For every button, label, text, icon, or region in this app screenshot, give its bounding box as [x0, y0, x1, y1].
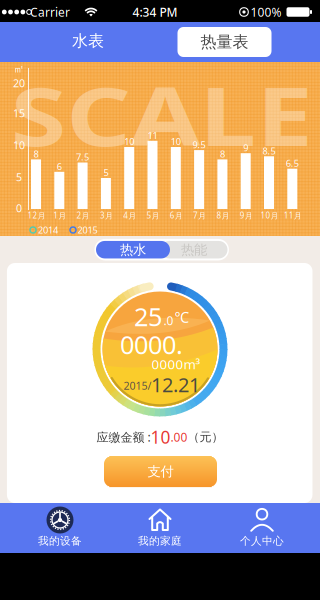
- staticText: 2015: [77, 224, 97, 236]
- staticText: ㎡: [13, 62, 24, 75]
- staticText: 10: [124, 135, 134, 148]
- staticText: 8: [33, 148, 38, 160]
- staticText: 0: [16, 201, 22, 215]
- staticText: 8: [220, 148, 225, 160]
- staticText: 9月: [240, 210, 253, 221]
- staticText: 11月: [284, 210, 302, 221]
- staticText: ℃: [174, 307, 189, 327]
- staticText: 9.5: [193, 138, 206, 151]
- staticText: 7月: [193, 210, 206, 221]
- staticText: 6: [57, 160, 62, 172]
- staticText: 12月: [27, 210, 45, 221]
- staticText: 2015/: [123, 378, 151, 393]
- staticText: 25: [134, 300, 162, 333]
- button[interactable]: 我的家庭: [113, 503, 207, 553]
- staticText: 9: [243, 141, 248, 154]
- staticText: （元）: [187, 430, 223, 444]
- button[interactable]: 热能: [160, 241, 227, 258]
- staticText: 3月: [100, 210, 113, 221]
- staticText: SCALE: [42, 62, 282, 168]
- staticText: 热能: [181, 241, 207, 258]
- staticText: 5月: [146, 210, 159, 221]
- staticText: 我的设备: [38, 534, 82, 547]
- button[interactable]: 支付: [104, 456, 217, 487]
- staticText: 2月: [77, 210, 90, 221]
- staticText: 水表: [72, 31, 104, 51]
- staticText: 12.21: [151, 371, 200, 398]
- staticText: 支付: [147, 463, 173, 480]
- staticText: 6.5: [286, 157, 299, 169]
- staticText: 8月: [216, 210, 229, 221]
- staticText: 11: [147, 129, 157, 141]
- staticText: 个人中心: [240, 534, 284, 547]
- staticText: 15: [13, 106, 25, 120]
- staticText: 10: [171, 135, 181, 148]
- staticText: 4月: [123, 210, 136, 221]
- staticText: Carrier: [30, 4, 70, 20]
- staticText: 0000m³: [151, 355, 200, 373]
- staticText: 1月: [53, 210, 66, 221]
- staticText: .00: [170, 429, 187, 445]
- staticText: 0000.: [120, 328, 183, 361]
- staticText: 热水: [120, 241, 146, 258]
- button[interactable]: 我的设备: [13, 503, 107, 553]
- button[interactable]: 热水: [96, 241, 170, 258]
- staticText: 8.5: [262, 145, 275, 157]
- staticText: 5: [103, 166, 108, 179]
- staticText: 热量表: [200, 32, 248, 52]
- staticText: 2014: [38, 224, 58, 236]
- staticText: 10月: [260, 210, 278, 221]
- staticText: 7.5: [76, 151, 89, 163]
- staticText: 20: [13, 76, 25, 90]
- staticText: 100%: [250, 4, 281, 20]
- staticText: 6月: [170, 210, 183, 221]
- button[interactable]: 热量表: [177, 27, 271, 57]
- staticText: 应缴金额 :: [96, 429, 150, 445]
- button[interactable]: 个人中心: [215, 503, 309, 553]
- staticText: 我的家庭: [138, 534, 182, 547]
- staticText: 4:34 PM: [132, 4, 177, 20]
- staticText: 10: [150, 425, 170, 448]
- staticText: 10: [13, 138, 25, 152]
- staticText: 5: [16, 170, 22, 184]
- staticText: .0: [163, 312, 173, 328]
